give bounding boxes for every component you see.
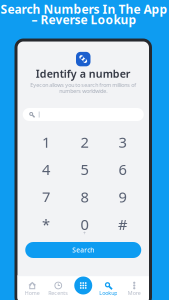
staticText: Eyecon allows you to search from million… — [30, 81, 136, 89]
button[interactable]: 5 — [66, 161, 102, 183]
staticText: 3 — [118, 132, 126, 152]
staticText: – Reverse Lookup — [31, 11, 136, 27]
staticText: 1 — [42, 132, 50, 152]
staticText: 6 — [118, 160, 126, 179]
staticText: 8 — [80, 187, 88, 207]
staticText: 2 — [80, 132, 88, 152]
staticText: * — [42, 214, 50, 234]
staticText: More — [128, 289, 141, 297]
button[interactable]: Search — [25, 242, 141, 258]
staticText: numbers worldwide. — [59, 87, 107, 95]
staticText: Search Numbers In The App — [0, 1, 167, 17]
staticText: Search — [72, 246, 94, 254]
button[interactable]: Keypad — [74, 276, 92, 294]
button[interactable]: 3 — [104, 133, 140, 155]
staticText: # — [118, 214, 127, 234]
staticText: 7 — [42, 187, 50, 207]
staticText: Lookup — [99, 289, 117, 297]
staticText: + — [83, 230, 86, 237]
staticText: Recents — [48, 289, 68, 297]
button[interactable]: 8 — [66, 188, 102, 210]
button[interactable]: # — [104, 216, 140, 238]
button[interactable]: Lookup — [95, 280, 121, 296]
button[interactable]: 2 — [66, 133, 102, 155]
staticText: Identify a number — [36, 67, 131, 81]
staticText: 4 — [42, 160, 50, 179]
button[interactable]: 7 — [28, 188, 64, 210]
button[interactable]: 1 — [28, 133, 64, 155]
button[interactable]: 6 — [104, 161, 140, 183]
button[interactable]: Recents — [45, 280, 71, 296]
staticText: Home — [25, 289, 40, 297]
button[interactable]: * — [28, 216, 64, 238]
button[interactable]: Home — [19, 280, 45, 296]
staticText: 0 — [80, 214, 88, 234]
button[interactable]: 9 — [104, 188, 140, 210]
staticText: 9 — [118, 187, 126, 207]
button[interactable]: 0 — [66, 216, 102, 238]
button[interactable]: More — [121, 280, 147, 296]
button[interactable]: 4 — [28, 161, 64, 183]
staticText: 5 — [80, 160, 88, 179]
